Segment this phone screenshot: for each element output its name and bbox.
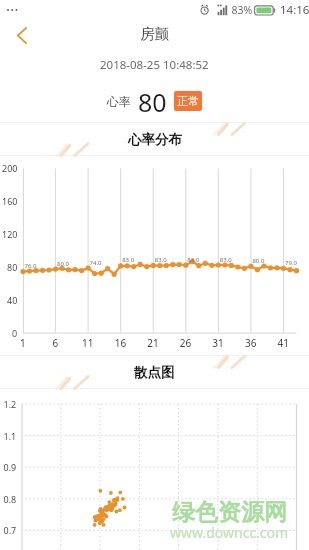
staticText: 心率分布 [128, 131, 182, 148]
staticText: 绿色资源网 [172, 498, 287, 527]
staticText: 房颤 [140, 25, 169, 43]
staticText: 80 [138, 85, 167, 119]
button[interactable]: Back [0, 21, 42, 49]
staticText: 2018-08-25 10:48:52 [100, 57, 209, 73]
staticText: 正常 [177, 94, 199, 108]
staticText: www.downcc.com [170, 523, 289, 542]
staticText: 心率 [107, 94, 131, 109]
staticText: 散点图 [134, 364, 175, 381]
button[interactable]: 正常 [174, 91, 202, 111]
